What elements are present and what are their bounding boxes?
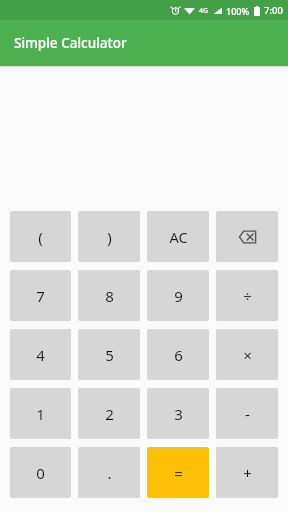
button[interactable]: 8 [78, 270, 140, 321]
button[interactable]: Backspace [216, 211, 278, 262]
staticText: 4 [36, 345, 45, 365]
staticText: ) [107, 227, 112, 247]
button[interactable]: ÷ [216, 270, 278, 321]
button[interactable]: 9 [147, 270, 209, 321]
button[interactable]: + [216, 447, 278, 498]
staticText: 9 [174, 286, 183, 306]
staticText: 5 [105, 345, 114, 365]
staticText: 100% [226, 5, 250, 17]
staticText: 8 [105, 286, 114, 306]
staticText: 3 [174, 404, 183, 424]
staticText: 0 [36, 463, 45, 483]
staticText: . [107, 463, 112, 483]
button[interactable]: 5 [78, 329, 140, 380]
button[interactable]: 2 [78, 388, 140, 439]
button[interactable]: 7 [10, 270, 71, 321]
staticText: 2 [105, 404, 114, 424]
staticText: 4G [199, 6, 209, 16]
button[interactable]: . [78, 447, 140, 498]
button[interactable]: 3 [147, 388, 209, 439]
staticText: ( [38, 227, 43, 247]
staticText: × [243, 345, 252, 365]
button[interactable]: - [216, 388, 278, 439]
button[interactable]: 0 [10, 447, 71, 498]
staticText: AC [169, 227, 188, 247]
staticText: - [245, 404, 250, 424]
button[interactable]: 1 [10, 388, 71, 439]
button[interactable]: = [147, 447, 209, 498]
staticText: ÷ [243, 286, 252, 306]
staticText: 1 [36, 404, 45, 424]
staticText: 7 [36, 286, 45, 306]
staticText: + [243, 463, 252, 483]
staticText: = [174, 463, 183, 483]
button[interactable]: ( [10, 211, 71, 262]
button[interactable]: × [216, 329, 278, 380]
button[interactable]: 4 [10, 329, 71, 380]
button[interactable]: 6 [147, 329, 209, 380]
staticText: Simple Calculator [14, 34, 127, 52]
button[interactable]: AC [147, 211, 209, 262]
staticText: 7:00 [264, 4, 283, 17]
staticText: 6 [174, 345, 183, 365]
button[interactable]: ) [78, 211, 140, 262]
